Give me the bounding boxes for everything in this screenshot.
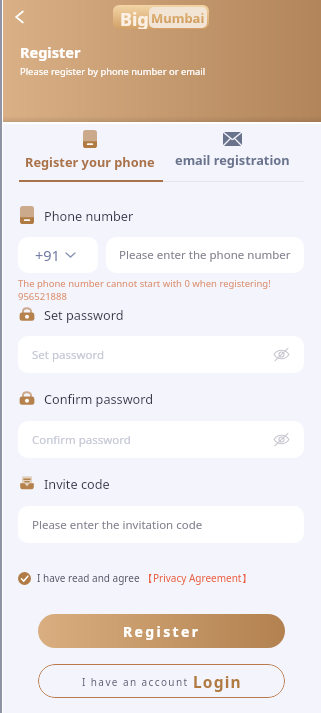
staticText: Please enter the invitation code	[32, 517, 203, 533]
staticText: email registration	[175, 151, 290, 168]
staticText: The phone number cannot start with 0 whe…	[18, 277, 271, 290]
staticText: Register	[20, 42, 81, 62]
button[interactable]: Show password	[273, 431, 290, 448]
staticText: Phone number	[44, 207, 134, 224]
button[interactable]: Back	[8, 5, 32, 29]
button[interactable]: Show password	[273, 346, 290, 363]
staticText: 【Privacy Agreement】	[143, 571, 252, 585]
staticText: I have an account	[82, 675, 189, 689]
button[interactable]: +91	[18, 237, 98, 273]
staticText: I have read and agree	[37, 571, 140, 585]
button[interactable]: Please enter the invitation code	[18, 506, 304, 543]
staticText: Confirm password	[44, 390, 154, 407]
staticText: Login	[193, 671, 242, 692]
staticText: Please enter the phone number	[119, 247, 291, 263]
staticText: Register your phone	[25, 153, 155, 170]
staticText: Mumbai	[151, 9, 205, 27]
staticText: 956521888	[18, 290, 67, 303]
button[interactable]: Register	[38, 614, 285, 648]
button[interactable]: I have read and agree	[18, 570, 252, 586]
button[interactable]: Set password	[18, 336, 304, 373]
staticText: Set password	[32, 347, 105, 363]
button[interactable]: Please enter the phone number	[106, 237, 304, 273]
button[interactable]: Confirm password	[18, 421, 304, 458]
button[interactable]: email registration	[161, 126, 304, 182]
staticText: Confirm password	[32, 432, 131, 448]
button[interactable]: Register your phone	[19, 126, 161, 182]
staticText: Invite code	[44, 475, 110, 492]
button[interactable]: I have an account	[38, 664, 285, 698]
staticText: Register	[123, 622, 201, 641]
staticText: Please register by phone number or email	[20, 65, 206, 78]
staticText: Set password	[44, 306, 124, 323]
staticText: Big	[120, 7, 149, 29]
staticText: +91	[35, 245, 60, 265]
